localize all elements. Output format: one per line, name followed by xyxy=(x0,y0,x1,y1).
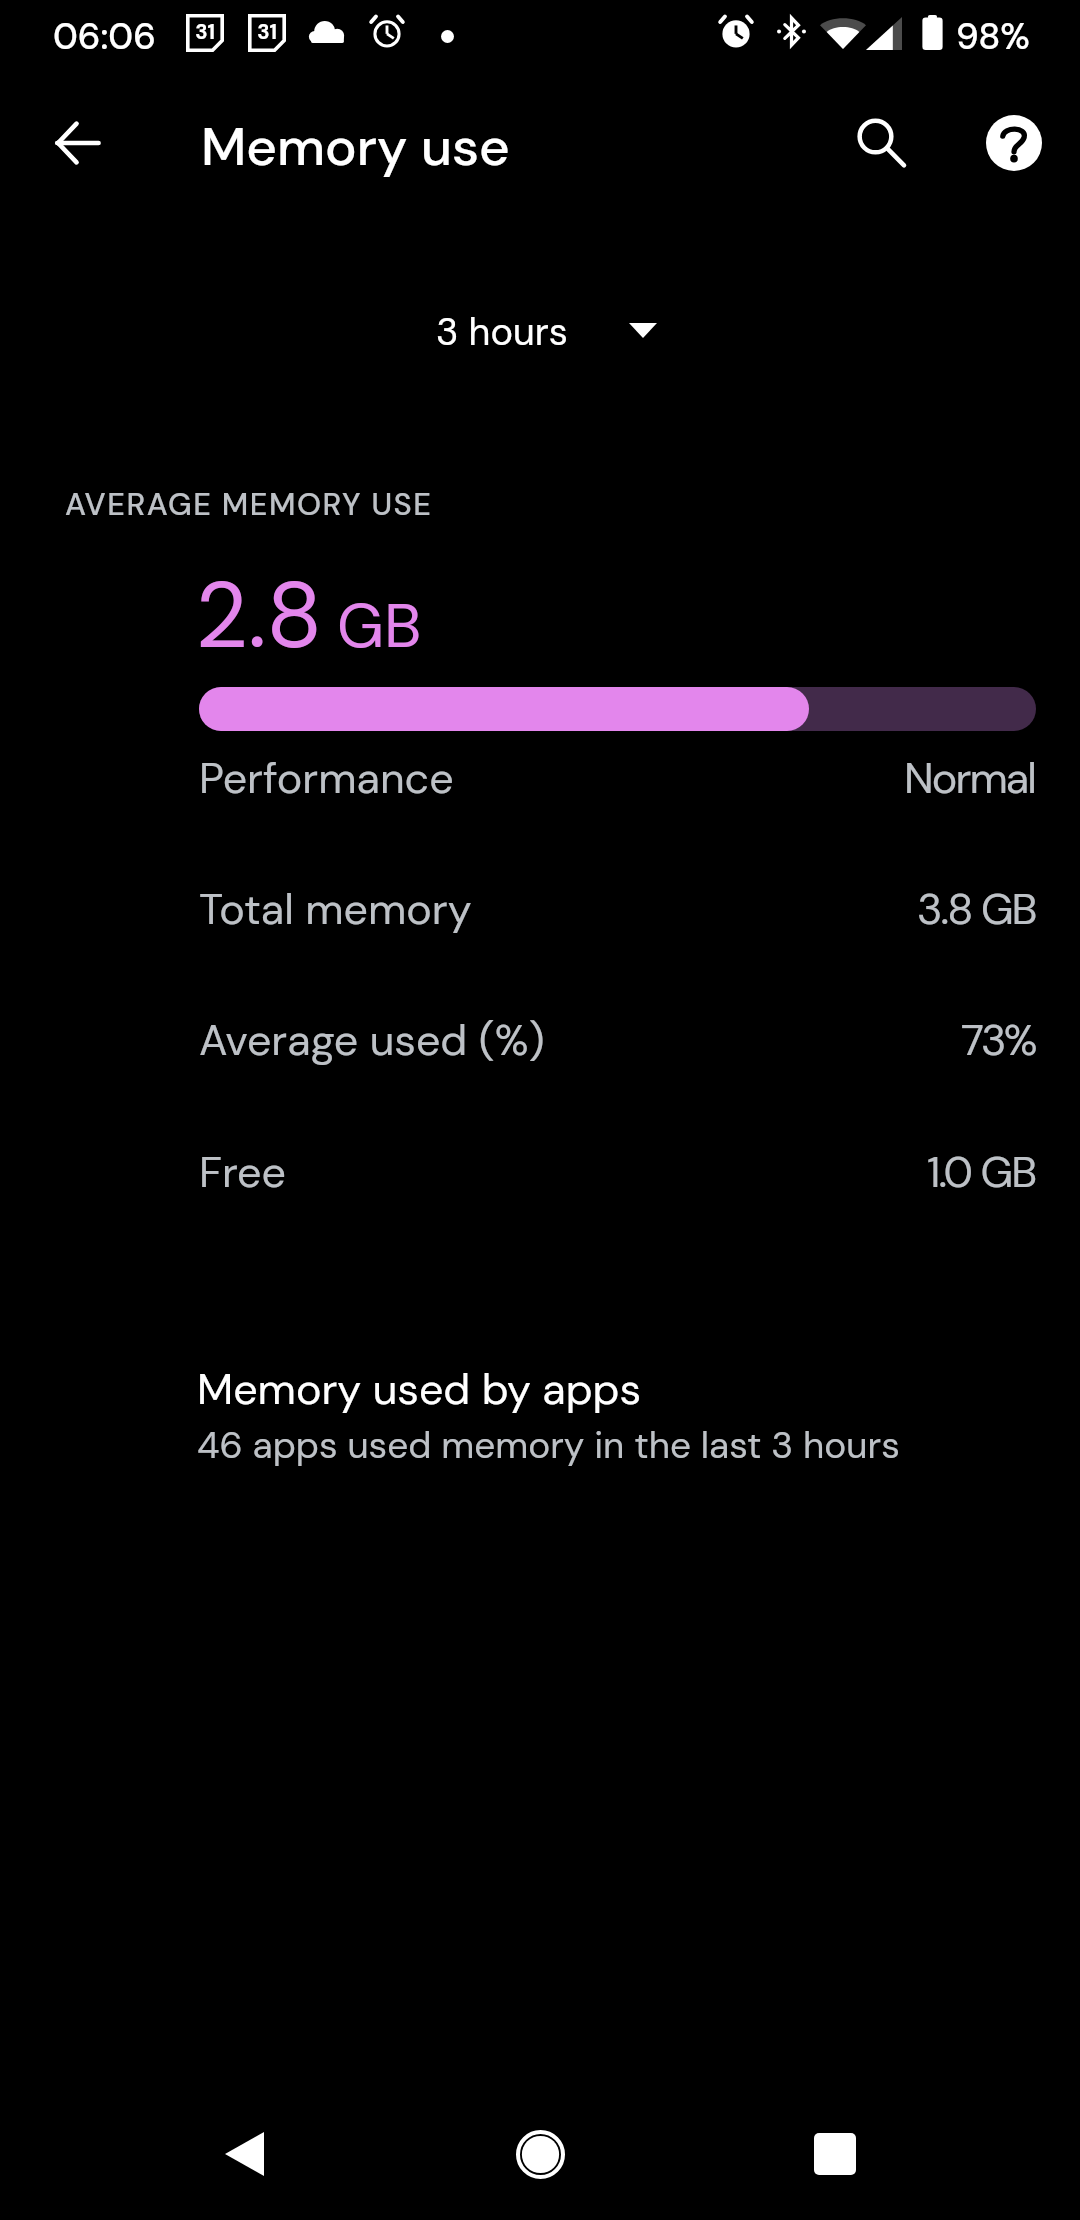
staticText: Memory used by apps xyxy=(197,1361,642,1417)
staticText: 1.0 GB xyxy=(927,1144,1036,1200)
button[interactable]: Free xyxy=(0,1119,1080,1250)
staticText: Normal xyxy=(904,750,1036,806)
staticText: 31 xyxy=(195,19,215,46)
staticText: Free xyxy=(199,1144,286,1200)
button[interactable]: Recent apps xyxy=(775,2094,895,2214)
button[interactable]: Performance xyxy=(0,725,1080,856)
button[interactable]: Help xyxy=(966,95,1062,191)
staticText: 3 hours xyxy=(436,307,568,356)
button[interactable]: Average used (%) xyxy=(0,987,1080,1118)
button[interactable]: Home xyxy=(480,2094,600,2214)
staticText: 3.8 GB xyxy=(917,881,1036,937)
button[interactable]: Back xyxy=(184,2094,304,2214)
staticText: Memory use xyxy=(201,112,510,181)
staticText: GB xyxy=(337,585,422,666)
staticText: AVERAGE MEMORY USE xyxy=(65,484,433,524)
button[interactable]: Search xyxy=(833,95,929,191)
staticText: 73% xyxy=(961,1012,1036,1068)
staticText: Performance xyxy=(199,750,454,806)
staticText: 06:06 xyxy=(53,13,156,60)
button[interactable]: Memory used by apps xyxy=(0,1330,1080,1502)
staticText: 2.8 xyxy=(195,556,323,676)
button[interactable]: Total memory xyxy=(0,856,1080,987)
button[interactable]: Navigate up xyxy=(29,95,125,191)
staticText: Average used (%) xyxy=(199,1012,545,1068)
staticText: 31 xyxy=(257,19,277,46)
staticText: 98% xyxy=(956,13,1030,60)
staticText: 46 apps used memory in the last 3 hours xyxy=(197,1421,900,1469)
staticText: Total memory xyxy=(199,881,472,937)
button[interactable]: 3 hours xyxy=(414,292,683,373)
